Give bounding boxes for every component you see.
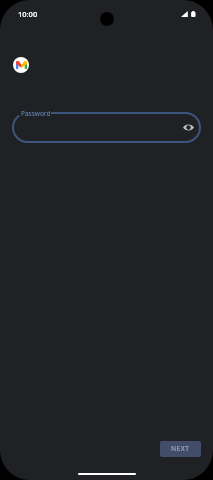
staticText: Password bbox=[21, 109, 51, 118]
staticText: 10:00 bbox=[18, 9, 38, 19]
button[interactable]: NEXT bbox=[160, 441, 201, 457]
button[interactable]: Gmail bbox=[13, 57, 29, 73]
staticText: NEXT bbox=[171, 444, 190, 453]
button[interactable]: Password bbox=[12, 112, 201, 143]
button[interactable]: Show password bbox=[180, 119, 196, 135]
